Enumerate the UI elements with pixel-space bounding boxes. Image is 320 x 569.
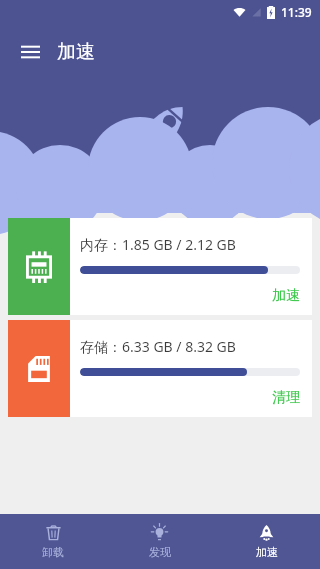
staticText: 卸载 bbox=[42, 545, 64, 559]
button[interactable]: 加速 bbox=[213, 514, 320, 569]
staticText: 发现 bbox=[149, 545, 171, 559]
other: RAM bbox=[8, 218, 70, 315]
other: Storage bbox=[8, 320, 70, 417]
staticText: 加速 bbox=[80, 287, 300, 305]
staticText: 内存：1.85 GB / 2.12 GB bbox=[80, 235, 236, 254]
staticText: 清理 bbox=[80, 389, 300, 407]
button[interactable]: 发现 bbox=[106, 514, 213, 569]
staticText: 11:39 bbox=[281, 4, 312, 20]
button[interactable]: Menu bbox=[10, 32, 50, 72]
staticText: 加速 bbox=[57, 40, 95, 64]
button[interactable]: RAM bbox=[8, 218, 312, 315]
button[interactable]: 卸载 bbox=[0, 514, 106, 569]
staticText: 加速 bbox=[256, 545, 278, 559]
button[interactable]: Storage bbox=[8, 320, 312, 417]
staticText: 存储：6.33 GB / 8.32 GB bbox=[80, 337, 236, 356]
